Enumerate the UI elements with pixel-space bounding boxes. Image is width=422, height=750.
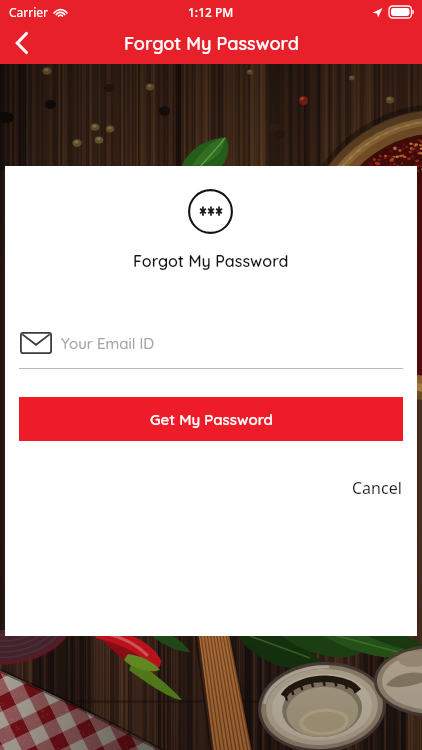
staticText: 1:12 PM: [188, 4, 234, 20]
staticText: Your Email ID: [61, 334, 155, 353]
staticText: Forgot My Password: [133, 251, 289, 271]
button[interactable]: Back: [0, 21, 44, 65]
staticText: Forgot My Password: [124, 32, 299, 55]
button[interactable]: Cancel: [346, 471, 408, 505]
staticText: Get My Password: [150, 410, 273, 429]
staticText: Cancel: [352, 477, 402, 499]
staticText: Carrier: [9, 4, 49, 20]
button[interactable]: Get My Password: [19, 397, 403, 441]
